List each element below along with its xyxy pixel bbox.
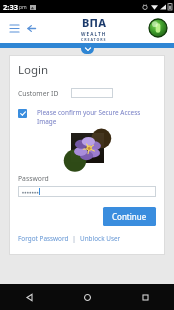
staticText: BПA: [82, 15, 107, 30]
button[interactable]: Recent apps: [116, 284, 174, 310]
staticText: pm: [19, 4, 27, 11]
staticText: Please confirm your Secure Access Image: [37, 108, 156, 126]
staticText: Password: [18, 174, 49, 183]
button[interactable]: Forgot Password: [18, 234, 69, 243]
staticText: Unblock User: [80, 234, 121, 243]
button[interactable]: Menu: [7, 21, 21, 35]
staticText: WEALTH: [81, 31, 107, 37]
button[interactable]: [71, 88, 113, 98]
staticText: Forgot Password: [18, 234, 69, 243]
staticText: |: [69, 234, 80, 243]
staticText: CREATORS: [81, 37, 107, 42]
button[interactable]: Back: [0, 284, 58, 310]
button[interactable]: Unblock User: [80, 234, 121, 243]
staticText: Login: [18, 62, 49, 78]
staticText: Customer ID: [18, 89, 59, 98]
button[interactable]: Home: [58, 284, 116, 310]
staticText: Continue: [112, 211, 147, 222]
button[interactable]: BПA: [81, 15, 107, 42]
button[interactable]: Confirm Secure Access Image: [18, 109, 27, 118]
button[interactable]: Account: [148, 18, 168, 38]
button[interactable]: [18, 186, 156, 197]
button[interactable]: Back: [24, 21, 38, 35]
button[interactable]: Expand: [81, 43, 94, 54]
staticText: 2:33: [3, 2, 18, 12]
button[interactable]: Continue: [103, 207, 156, 226]
